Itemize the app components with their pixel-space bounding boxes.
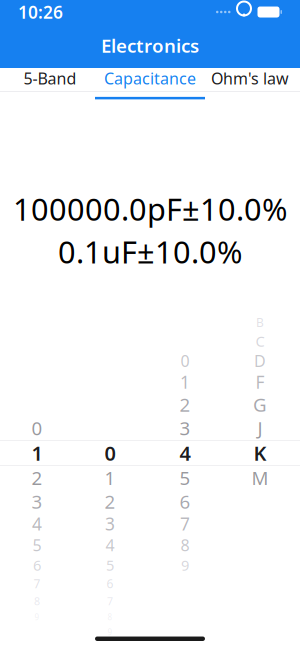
staticText: 7: [180, 512, 190, 535]
staticText: 0: [180, 350, 189, 371]
staticText: 10:26: [18, 0, 63, 23]
staticText: 6: [179, 489, 190, 514]
staticText: M: [251, 465, 268, 490]
button[interactable]: Capacitance: [100, 68, 200, 91]
staticText: 0: [31, 416, 42, 440]
staticText: F: [255, 370, 264, 393]
staticText: 2: [31, 465, 42, 490]
staticText: 8: [180, 534, 189, 556]
staticText: 9: [181, 555, 189, 575]
staticText: 9: [34, 612, 39, 623]
staticText: 3: [179, 416, 190, 440]
staticText: 0.1uF±10.0%: [58, 231, 242, 272]
staticText: 0: [104, 440, 115, 466]
staticText: 5: [106, 555, 114, 575]
staticText: 3: [105, 512, 115, 535]
staticText: 9: [107, 627, 112, 637]
staticText: 2: [179, 392, 190, 417]
staticText: 3: [31, 489, 42, 514]
staticText: 5: [179, 465, 190, 490]
staticText: 4: [179, 440, 190, 466]
staticText: 5: [32, 534, 41, 556]
staticText: 1: [31, 440, 42, 466]
button[interactable]: 5-Band: [0, 68, 100, 91]
staticText: 4: [32, 512, 42, 535]
staticText: G: [253, 392, 267, 417]
staticText: 6: [33, 555, 41, 575]
staticText: Ohm's law: [211, 68, 289, 89]
staticText: 8: [107, 612, 112, 623]
staticText: Electronics: [101, 33, 199, 58]
staticText: 1: [104, 465, 115, 490]
staticText: 5-Band: [23, 68, 76, 89]
staticText: 7: [107, 594, 113, 608]
staticText: D: [254, 350, 266, 371]
staticText: 7: [33, 576, 40, 592]
staticText: B: [256, 314, 264, 330]
staticText: 6: [106, 576, 113, 592]
staticText: 4: [105, 534, 114, 556]
staticText: K: [253, 440, 266, 466]
staticText: C: [255, 331, 264, 351]
staticText: 8: [34, 594, 40, 608]
staticText: J: [257, 416, 262, 440]
button[interactable]: Ohm's law: [200, 68, 300, 91]
staticText: 100000.0pF±10.0%: [13, 188, 287, 229]
staticText: Capacitance: [104, 68, 196, 89]
staticText: 1: [180, 370, 190, 393]
staticText: 2: [104, 489, 115, 514]
